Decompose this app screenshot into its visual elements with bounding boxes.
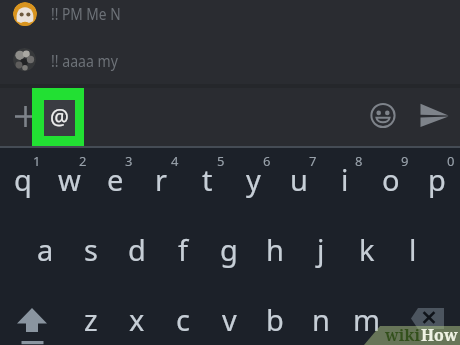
button[interactable]: e: [92, 155, 138, 203]
staticText: !! aaaa my: [51, 50, 118, 72]
staticText: x: [129, 300, 145, 339]
button[interactable]: n: [298, 295, 344, 343]
button[interactable]: Shift: [0, 295, 64, 345]
button[interactable]: Emoji: [366, 99, 400, 133]
staticText: t: [202, 160, 213, 199]
staticText: !! PM Me N: [51, 3, 121, 25]
button[interactable]: Backspace: [400, 295, 460, 345]
staticText: y: [246, 160, 261, 199]
button[interactable]: x: [114, 295, 160, 343]
button[interactable]: d: [114, 225, 160, 273]
staticText: 7: [309, 152, 317, 166]
staticText: 8: [355, 152, 363, 166]
staticText: b: [266, 300, 284, 339]
staticText: q: [14, 160, 32, 199]
staticText: 5: [217, 152, 225, 166]
staticText: e: [107, 160, 124, 199]
button[interactable]: q: [0, 155, 46, 203]
staticText: 1: [33, 152, 41, 166]
staticText: a: [37, 230, 54, 269]
staticText: l: [409, 230, 417, 269]
button[interactable]: o: [368, 155, 414, 203]
staticText: k: [359, 230, 375, 269]
button[interactable]: s: [68, 225, 114, 273]
button[interactable]: j: [298, 225, 344, 273]
staticText: v: [222, 300, 237, 339]
button[interactable]: Send: [414, 98, 454, 138]
staticText: 0: [447, 152, 455, 166]
staticText: 2: [79, 152, 87, 166]
staticText: wiki: [385, 324, 421, 345]
button[interactable]: p: [414, 155, 460, 203]
button[interactable]: i: [322, 155, 368, 203]
button[interactable]: a: [22, 225, 68, 273]
staticText: 9: [401, 152, 409, 166]
staticText: h: [266, 230, 284, 269]
staticText: 4: [171, 152, 179, 166]
button[interactable]: c: [160, 295, 206, 343]
staticText: p: [428, 160, 446, 199]
button[interactable]: m: [344, 295, 390, 343]
staticText: o: [382, 160, 400, 199]
button[interactable]: k: [344, 225, 390, 273]
staticText: j: [317, 230, 325, 269]
staticText: d: [128, 230, 146, 269]
button[interactable]: r: [138, 155, 184, 203]
button[interactable]: @: [32, 88, 84, 146]
staticText: How: [421, 324, 458, 345]
button[interactable]: w: [46, 155, 92, 203]
staticText: c: [176, 300, 190, 339]
staticText: 3: [125, 152, 133, 166]
staticText: f: [178, 230, 188, 269]
staticText: s: [84, 230, 98, 269]
button[interactable]: z: [68, 295, 114, 343]
staticText: r: [155, 160, 167, 199]
staticText: n: [312, 300, 330, 339]
staticText: i: [341, 160, 349, 199]
button[interactable]: h: [252, 225, 298, 273]
button[interactable]: f: [160, 225, 206, 273]
button[interactable]: l: [390, 225, 436, 273]
staticText: w: [58, 160, 81, 199]
staticText: m: [353, 300, 381, 339]
staticText: g: [220, 230, 238, 269]
staticText: 6: [263, 152, 271, 166]
staticText: @: [50, 103, 69, 132]
button[interactable]: v: [206, 295, 252, 343]
button[interactable]: b: [252, 295, 298, 343]
button[interactable]: Add attachment: [10, 101, 40, 131]
button[interactable]: g: [206, 225, 252, 273]
button[interactable]: u: [276, 155, 322, 203]
staticText: z: [84, 300, 98, 339]
button[interactable]: y: [230, 155, 276, 203]
staticText: u: [290, 160, 308, 199]
button[interactable]: t: [184, 155, 230, 203]
